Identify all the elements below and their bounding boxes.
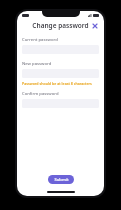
- staticText: Change password: [32, 21, 89, 30]
- staticText: New password: [22, 61, 52, 67]
- staticText: Password should be at least 8 characters: [22, 81, 92, 86]
- staticText: Confirm password: [22, 91, 59, 97]
- button[interactable]: Change password: [30, 20, 91, 31]
- staticText: Submit: [54, 177, 69, 183]
- button[interactable]: Submit: [48, 175, 74, 184]
- button[interactable]: Close: [91, 22, 99, 30]
- staticText: Current password: [22, 37, 58, 43]
